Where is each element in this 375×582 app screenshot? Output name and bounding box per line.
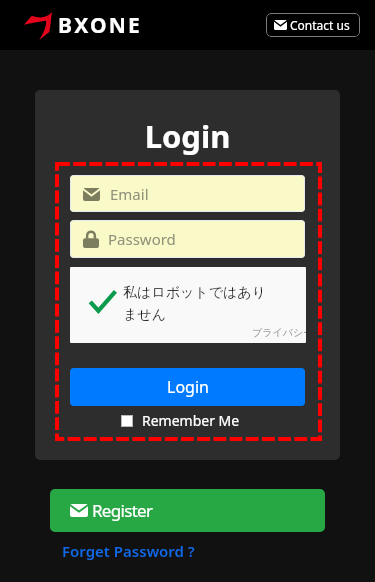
button[interactable]: Email [70,175,305,212]
staticText: プライバシー - 利 [252,325,306,339]
staticText: Register [92,499,153,522]
staticText: 私はロボットではあり ません [123,284,266,323]
staticText: Remember Me [142,411,240,430]
button[interactable]: BXONE home [24,11,143,40]
button[interactable]: Register [50,489,325,532]
staticText: BXONE [58,11,143,40]
staticText: Password [108,229,176,249]
staticText: Login [167,376,209,398]
button[interactable]: Forget Password ? [62,541,195,561]
button[interactable]: Password [70,220,305,258]
staticText: Contact us [290,17,350,33]
button[interactable]: Login [70,368,305,406]
staticText: Login [35,115,340,157]
staticText: Email [110,184,149,204]
button[interactable]: I am not a robot [70,267,306,343]
button[interactable]: Remember Me [121,411,240,430]
button[interactable]: Contact us [266,13,360,37]
